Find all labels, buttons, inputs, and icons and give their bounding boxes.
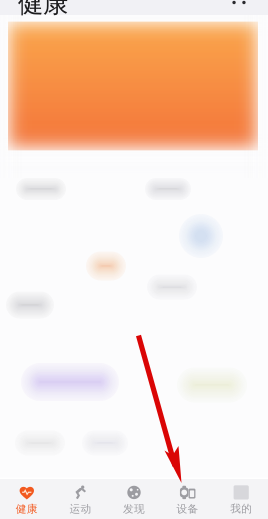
staticText: 我的 — [230, 502, 252, 515]
button[interactable]: 健康 — [0, 479, 54, 519]
button[interactable]: 我的 — [214, 479, 268, 519]
button[interactable]: More — [224, 0, 254, 15]
staticText: 运动 — [69, 502, 91, 515]
button[interactable]: 运动 — [54, 479, 107, 519]
button[interactable]: 设备 — [161, 479, 214, 519]
staticText: 发现 — [123, 502, 145, 515]
button[interactable]: 发现 — [107, 479, 161, 519]
staticText: 设备 — [177, 502, 199, 515]
staticText: 健康 — [18, 0, 68, 19]
staticText: 健康 — [16, 502, 38, 515]
